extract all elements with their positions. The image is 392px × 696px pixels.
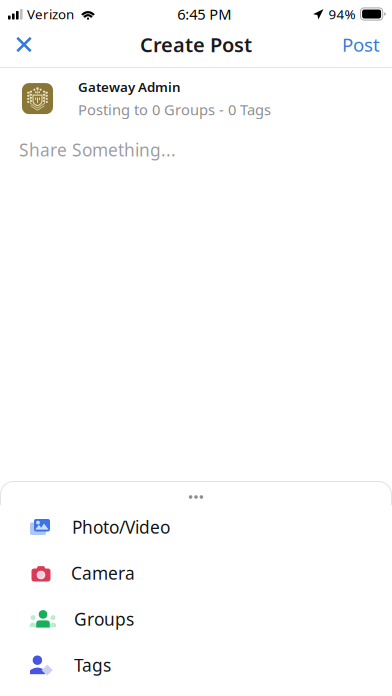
button[interactable]: Tags [0,642,392,688]
staticText: Posting to 0 Groups - 0 Tags [78,100,271,119]
button[interactable]: Groups [0,596,392,642]
staticText: Gateway Admin [78,78,181,96]
staticText: Groups [74,607,134,630]
staticText: Camera [71,561,135,584]
button[interactable]: Close [0,28,46,66]
staticText: Photo/Video [72,515,170,538]
staticText: Verizon [27,5,74,23]
staticText: 6:45 PM [177,4,231,24]
button[interactable]: Camera [0,550,392,596]
staticText: Post [342,32,380,57]
staticText: 94% [328,5,355,23]
button[interactable]: Post [328,25,392,70]
staticText: Share Something... [19,138,176,161]
staticText: Create Post [140,31,252,58]
staticText: Tags [74,653,111,676]
button[interactable]: Photo/Video [0,504,392,550]
